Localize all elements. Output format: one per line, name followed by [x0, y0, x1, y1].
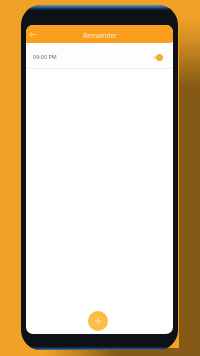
- button[interactable]: Toggle reminder: [153, 52, 163, 62]
- staticText: 09:00 PM: [33, 53, 57, 60]
- button[interactable]: Add reminder: [88, 311, 108, 331]
- button[interactable]: Back: [26, 28, 39, 41]
- staticText: Remainder: [83, 31, 117, 40]
- button[interactable]: 09:00 PM: [26, 43, 173, 68]
